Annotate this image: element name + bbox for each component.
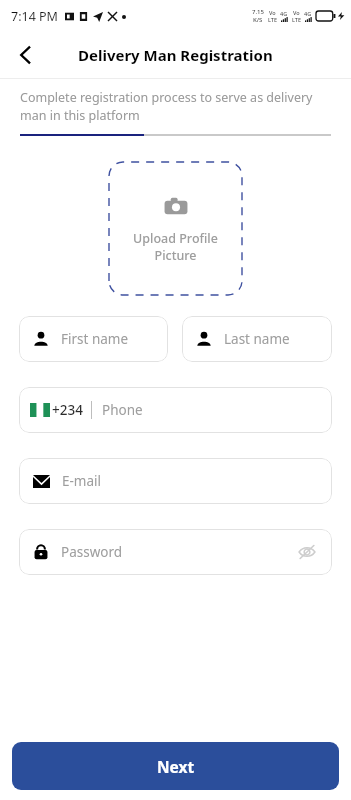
staticText: Password <box>61 543 123 561</box>
button[interactable]: Show password <box>291 536 323 568</box>
staticText: LTE <box>292 16 301 23</box>
staticText: Delivery Man Registration <box>78 45 273 65</box>
button[interactable]: First name <box>19 316 168 362</box>
staticText: Vo <box>269 9 276 16</box>
staticText: K/S <box>253 16 263 24</box>
staticText: 4G <box>304 10 312 17</box>
staticText: 7:14 PM <box>11 8 58 25</box>
staticText: Next <box>157 756 195 777</box>
staticText: Complete registration process to serve a… <box>20 89 331 124</box>
staticText: Last name <box>224 330 290 348</box>
button[interactable]: E-mail <box>19 458 332 504</box>
button[interactable]: Password <box>19 529 332 575</box>
button[interactable]: Last name <box>182 316 332 362</box>
staticText: 7.15 <box>252 8 264 16</box>
button[interactable]: Back <box>6 35 46 75</box>
button[interactable]: +234 <box>19 387 332 433</box>
staticText: Vo <box>293 9 300 16</box>
staticText: +234 <box>52 401 83 419</box>
staticText: E-mail <box>62 472 102 490</box>
staticText: Phone <box>102 401 143 419</box>
button[interactable]: Next <box>12 742 339 790</box>
staticText: LTE <box>268 16 277 23</box>
staticText: First name <box>61 330 129 348</box>
button[interactable]: Upload Profile Picture <box>108 161 243 296</box>
staticText: Upload Profile Picture <box>133 230 218 264</box>
staticText: 4G <box>280 10 288 17</box>
